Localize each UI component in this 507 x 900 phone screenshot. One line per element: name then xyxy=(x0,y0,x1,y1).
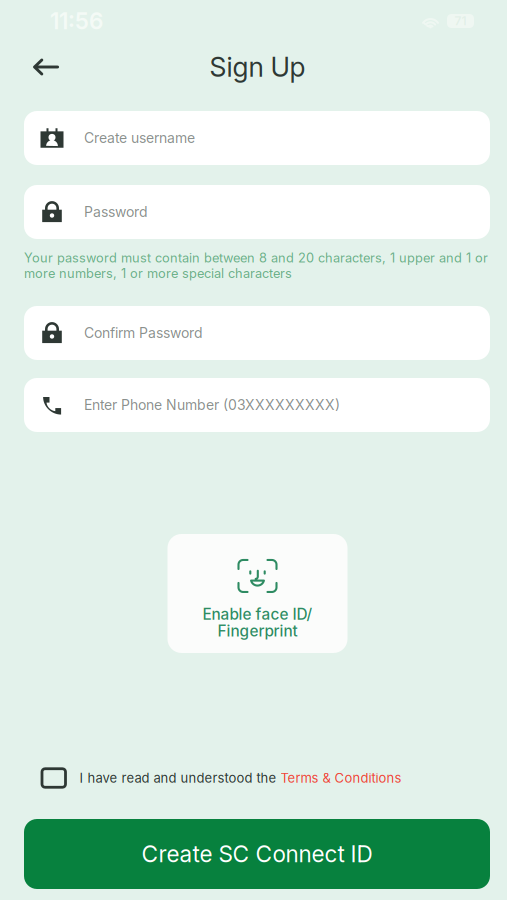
staticText: I have read and understood the xyxy=(79,770,280,786)
staticText: Password xyxy=(84,203,148,220)
staticText: Terms & Conditions xyxy=(280,770,401,786)
button[interactable]: Create SC Connect ID xyxy=(24,819,490,889)
staticText: Fingerprint xyxy=(217,621,297,640)
button[interactable]: Enter Phone Number (03XXXXXXXXX) xyxy=(24,378,490,432)
button[interactable]: Back xyxy=(24,47,68,87)
button[interactable]: Confirm Password xyxy=(24,306,490,360)
staticText: Enter Phone Number (03XXXXXXXXX) xyxy=(84,396,340,413)
button[interactable]: Password xyxy=(24,185,490,239)
button[interactable]: Terms & Conditions xyxy=(280,758,401,786)
staticText: Your password must contain between 8 and… xyxy=(24,250,488,281)
staticText: 11:56 xyxy=(50,7,103,35)
staticText: Enable face ID/ xyxy=(202,605,312,624)
staticText: Create SC Connect ID xyxy=(141,840,372,868)
staticText: Confirm Password xyxy=(84,324,203,341)
staticText: Sign Up xyxy=(209,51,305,83)
button[interactable]: Create username xyxy=(24,111,490,165)
staticText: 71 xyxy=(454,14,466,28)
button[interactable]: Accept terms xyxy=(42,757,65,787)
staticText: Create username xyxy=(84,129,195,146)
button[interactable]: Enable face ID/ xyxy=(167,534,347,653)
